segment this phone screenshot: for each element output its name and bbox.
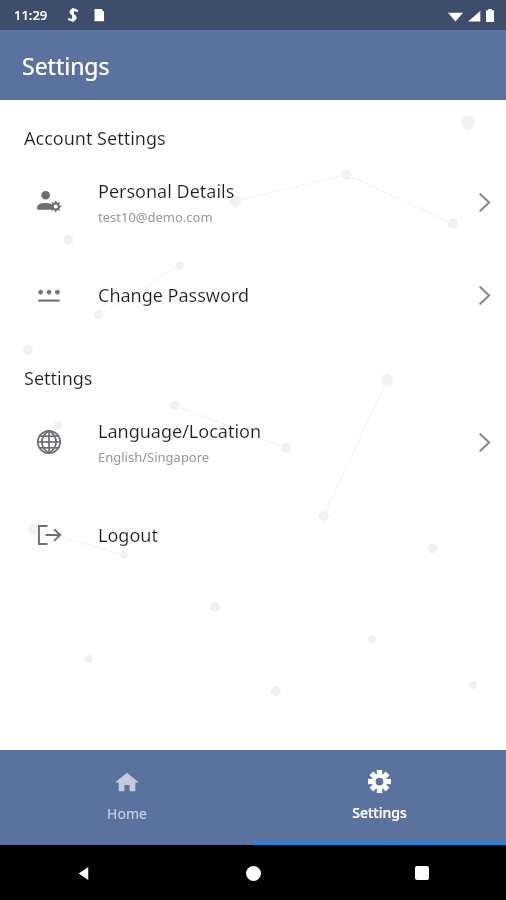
button[interactable]: Settings (253, 750, 506, 845)
staticText: Personal Details (98, 179, 235, 204)
button[interactable]: Home (0, 750, 253, 845)
button[interactable]: Language/Location (0, 418, 506, 466)
button[interactable]: Logout (0, 511, 506, 559)
staticText: Logout (98, 523, 158, 548)
staticText: test10@demo.com (98, 208, 213, 226)
staticText: English/Singapore (98, 448, 210, 466)
button[interactable]: Change Password (0, 271, 506, 319)
button[interactable]: Recent apps (399, 850, 445, 896)
button[interactable]: Personal Details (0, 178, 506, 226)
staticText: Change Password (98, 283, 250, 308)
staticText: Account Settings (24, 126, 166, 151)
button[interactable]: Home (230, 850, 276, 896)
staticText: Language/Location (98, 419, 262, 444)
staticText: Home (107, 804, 147, 823)
staticText: 11:29 (14, 6, 48, 24)
staticText: Settings (22, 50, 110, 81)
staticText: Settings (24, 366, 93, 391)
button[interactable]: Back (61, 850, 107, 896)
staticText: Settings (352, 803, 407, 822)
